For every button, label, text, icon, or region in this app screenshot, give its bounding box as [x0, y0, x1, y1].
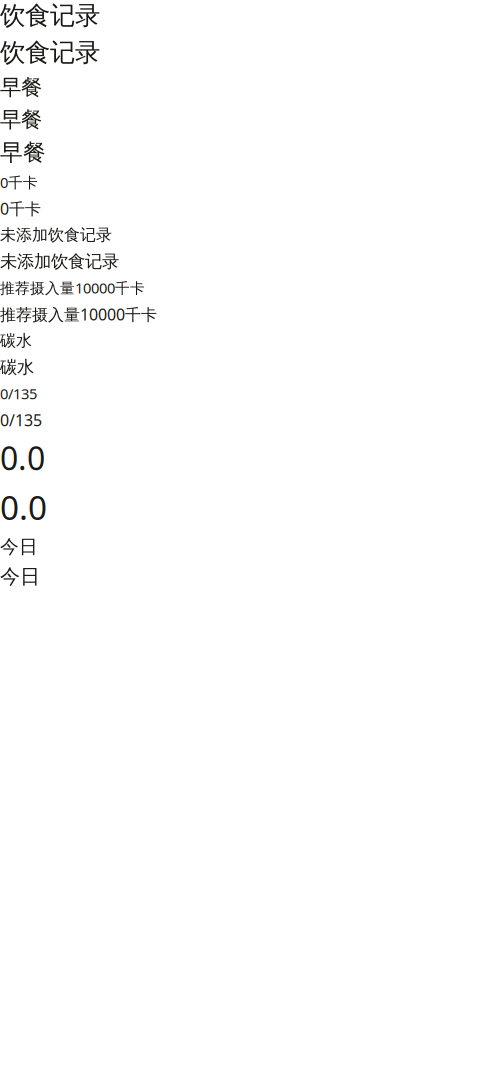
staticText: 0/135 [0, 409, 42, 430]
staticText: 碳水 [0, 356, 34, 378]
staticText: 0/135 [0, 384, 37, 403]
staticText: 推荐摄入量10000千卡 [0, 304, 157, 325]
staticText: 未添加饮食记录 [0, 251, 119, 272]
staticText: 早餐 [0, 139, 46, 166]
staticText: 0千卡 [0, 172, 38, 192]
staticText: 0.0 [0, 485, 47, 529]
staticText: 0.0 [0, 436, 45, 479]
staticText: 今日 [0, 564, 40, 589]
staticText: 饮食记录 [0, 0, 100, 31]
staticText: 未添加饮食记录 [0, 225, 112, 245]
staticText: 饮食记录 [0, 37, 100, 68]
staticText: 早餐 [0, 74, 42, 100]
staticText: 推荐摄入量10000千卡 [0, 278, 145, 298]
staticText: 碳水 [0, 331, 32, 351]
staticText: 0千卡 [0, 198, 41, 219]
staticText: 今日 [0, 535, 38, 558]
staticText: 早餐 [0, 106, 42, 133]
